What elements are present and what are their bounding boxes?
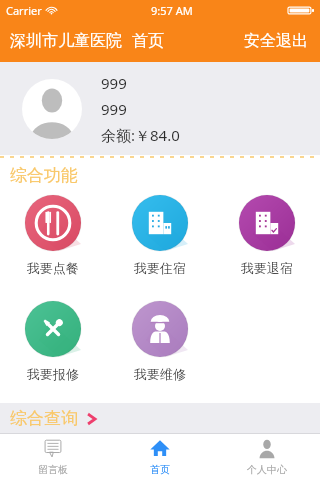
button[interactable]: 我要退宿 (213, 195, 320, 276)
staticText: Carrier (6, 3, 42, 18)
staticText: 我要点餐 (27, 260, 79, 276)
button[interactable]: 综合功能 (0, 159, 320, 191)
staticText: 安全退出 (244, 31, 308, 51)
button[interactable]: Avatar (22, 79, 82, 139)
button[interactable]: 综合查询 (0, 403, 320, 433)
staticText: 999 (101, 73, 127, 93)
staticText: 我要报修 (27, 366, 79, 382)
staticText: 我要住宿 (134, 260, 186, 276)
staticText: 首页 (132, 31, 164, 51)
button[interactable]: 我要点餐 (0, 195, 106, 276)
staticText: 深圳市儿童医院 (10, 31, 122, 51)
staticText: 留言板 (38, 463, 68, 476)
staticText: 余额:￥84.0 (101, 125, 180, 145)
button[interactable]: 我要住宿 (106, 195, 213, 276)
button[interactable]: 首页 (132, 31, 164, 51)
staticText: 999 (101, 99, 127, 119)
staticText: 我要维修 (134, 366, 186, 382)
button[interactable]: 安全退出 (242, 29, 310, 53)
staticText: 9:57 AM (151, 3, 193, 18)
staticText: 综合查询 (10, 408, 78, 429)
button[interactable]: 我要维修 (106, 301, 213, 382)
staticText: 综合功能 (10, 165, 78, 186)
button[interactable]: 个人中心 (213, 434, 320, 480)
staticText: 我要退宿 (241, 260, 293, 276)
button[interactable]: 首页 (106, 434, 213, 480)
button[interactable]: 我要报修 (0, 301, 106, 382)
staticText: 首页 (150, 463, 170, 476)
staticText: 个人中心 (247, 463, 287, 476)
button[interactable]: 留言板 (0, 434, 106, 480)
